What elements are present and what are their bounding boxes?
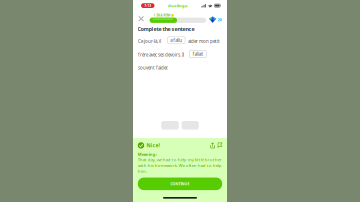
staticText: Meaning: <box>138 151 157 157</box>
staticText: fallait <box>192 51 203 57</box>
staticText: 7:13 <box>144 3 151 8</box>
staticText: Complete the sentence <box>138 25 195 32</box>
staticText: That day, we had to help my little broth… <box>138 157 222 174</box>
staticText: souvent l'aider. <box>138 65 168 71</box>
staticText: Nice! <box>146 142 159 149</box>
button[interactable]: Close lesson <box>137 14 145 23</box>
staticText: duolingo <box>168 3 188 8</box>
staticText: a fallu <box>170 37 182 43</box>
staticText: Ce jour-là, il <box>138 38 161 44</box>
button[interactable]: Report a problem <box>217 142 222 148</box>
button[interactable]: Used word tile <box>161 121 179 130</box>
button[interactable]: CONTINUE <box>138 177 222 190</box>
staticText: aider mon petit <box>188 38 220 44</box>
button[interactable]: Used word tile <box>182 121 199 130</box>
button[interactable]: Share <box>210 142 215 148</box>
staticText: 20 <box>218 17 222 22</box>
staticText: frère avec ses devoirs. Il <box>138 52 184 58</box>
button[interactable]: Gems: 20 <box>209 16 222 23</box>
staticText: 1 IN A ROW <box>153 13 170 17</box>
staticText: CONTINUE <box>170 181 189 186</box>
